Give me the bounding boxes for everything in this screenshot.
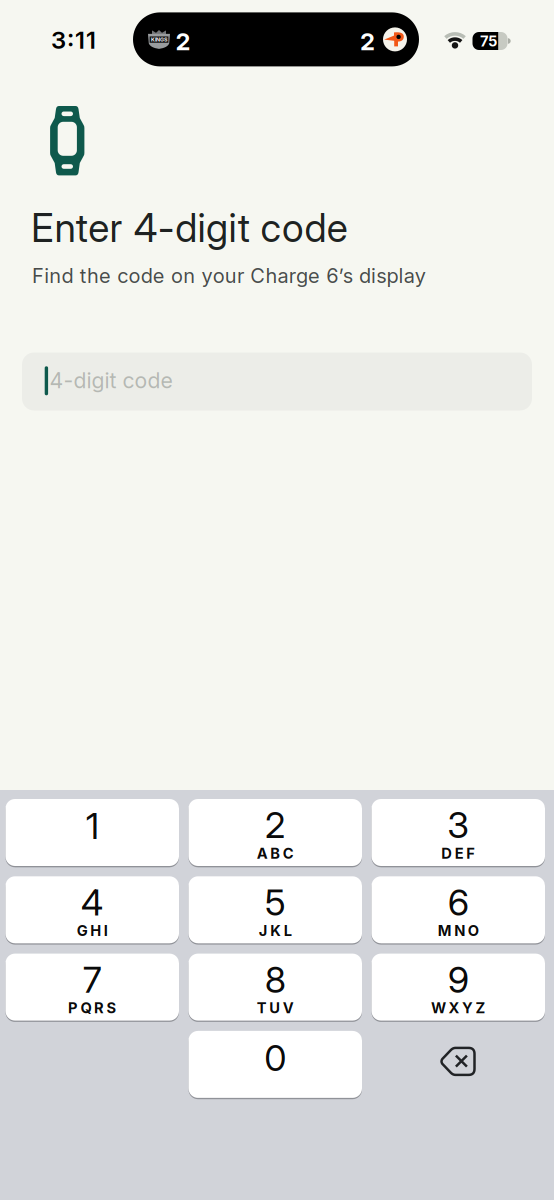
staticText: GHI — [77, 922, 108, 939]
staticText: 5 — [265, 881, 286, 924]
staticText: 4-digit code — [49, 368, 172, 393]
staticText: 1 — [86, 805, 99, 847]
staticText: 6 — [448, 881, 469, 924]
staticText: 75 — [480, 32, 497, 50]
staticText: 4 — [81, 881, 104, 924]
staticText: KINGS — [151, 36, 167, 43]
button[interactable]: 1 — [5, 799, 179, 866]
staticText: 8 — [265, 958, 286, 1001]
staticText: TUV — [257, 999, 294, 1016]
button[interactable]: Delete — [371, 1031, 545, 1098]
staticText: PQRS — [68, 999, 116, 1016]
button[interactable]: 0 — [188, 1031, 362, 1098]
button[interactable]: 4 — [5, 876, 179, 943]
staticText: 3 — [447, 804, 469, 846]
staticText: Find the code on your Charge 6’s display — [32, 264, 426, 288]
staticText: JKL — [259, 922, 292, 939]
staticText: Enter 4-digit code — [31, 205, 348, 251]
button[interactable]: 4-digit code — [22, 352, 532, 410]
staticText: 3:11 — [51, 26, 96, 54]
button[interactable]: 2 — [188, 799, 362, 866]
button[interactable]: Live Activity: Kings 2, Flyers 2 — [133, 12, 419, 66]
staticText: 0 — [264, 1037, 286, 1079]
staticText: 2 — [360, 27, 375, 55]
button[interactable]: 9 — [371, 954, 545, 1021]
staticText: DEF — [441, 845, 475, 862]
staticText: 2 — [175, 27, 190, 55]
staticText: MNO — [438, 922, 479, 939]
staticText: ABC — [257, 845, 294, 862]
staticText: 9 — [448, 958, 469, 1001]
button[interactable]: 7 — [5, 954, 179, 1021]
button[interactable]: 6 — [371, 876, 545, 943]
button[interactable]: 3 — [371, 799, 545, 866]
staticText: 2 — [265, 804, 286, 846]
button[interactable]: 8 — [188, 954, 362, 1021]
staticText: 7 — [83, 958, 102, 1001]
button[interactable]: 5 — [188, 876, 362, 943]
staticText: WXYZ — [431, 999, 485, 1016]
